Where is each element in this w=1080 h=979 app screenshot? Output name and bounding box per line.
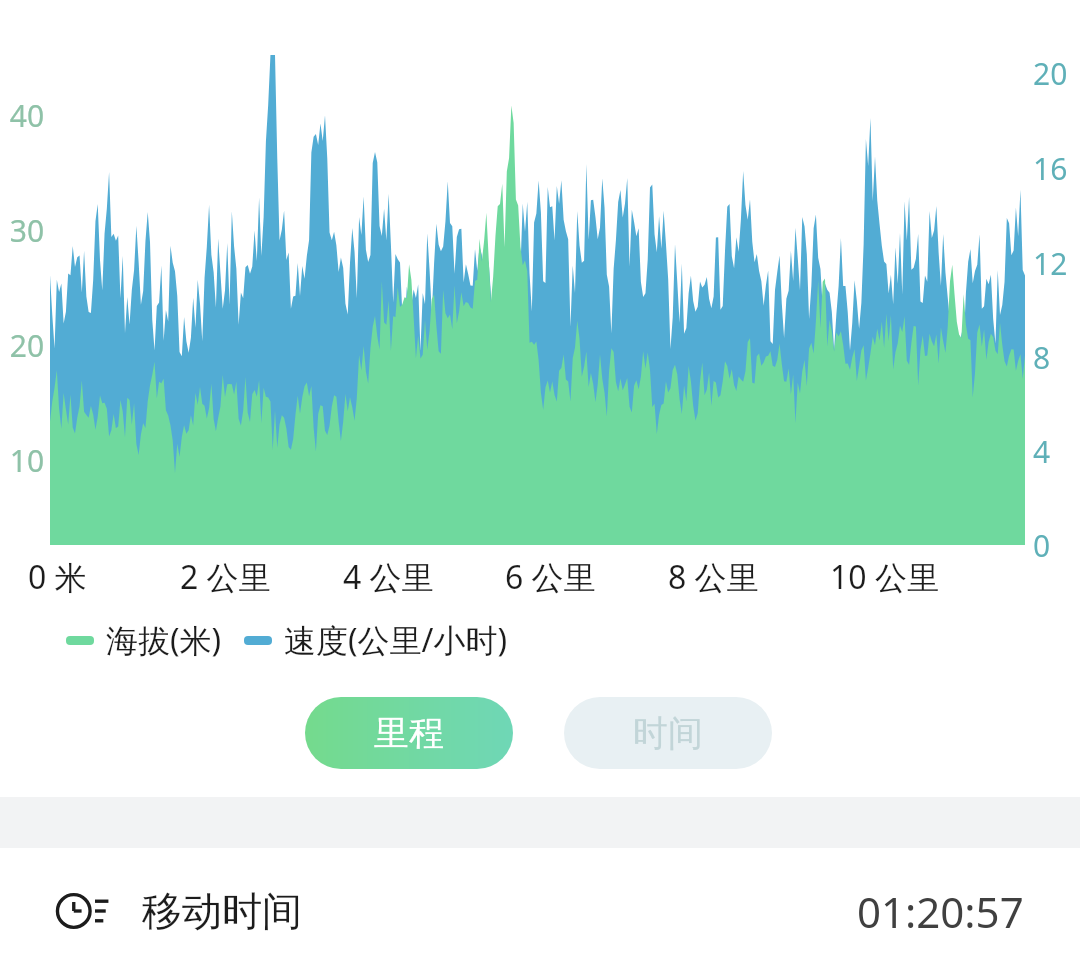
staticText: 海拔(米) [106, 618, 222, 662]
staticText: 时间 [633, 711, 703, 755]
other: 移动时间 [56, 887, 104, 935]
staticText: 8 公里 [668, 555, 759, 599]
button[interactable]: 时间 [564, 697, 772, 769]
staticText: 30 [4, 210, 50, 251]
staticText: 2 公里 [180, 555, 271, 599]
staticText: 4 [1033, 431, 1051, 472]
staticText: 01:20:57 [857, 883, 1024, 940]
staticText: 4 公里 [343, 555, 434, 599]
staticText: 10 [4, 440, 50, 481]
staticText: 0 [1033, 525, 1051, 566]
staticText: 移动时间 [142, 886, 302, 936]
staticText: 20 [4, 325, 50, 366]
staticText: 12 [1033, 243, 1068, 284]
staticText: 速度(公里/小时) [284, 618, 508, 662]
staticText: 8 [1033, 337, 1051, 378]
staticText: 16 [1033, 148, 1068, 189]
staticText: 6 公里 [505, 555, 596, 599]
staticText: 10 公里 [830, 555, 939, 599]
staticText: 20 [1033, 53, 1068, 94]
staticText: 里程 [374, 711, 444, 755]
button[interactable]: 移动时间 [0, 866, 1080, 956]
staticText: 40 [4, 95, 50, 136]
button[interactable]: 里程 [305, 697, 513, 769]
staticText: 0 米 [28, 555, 87, 599]
